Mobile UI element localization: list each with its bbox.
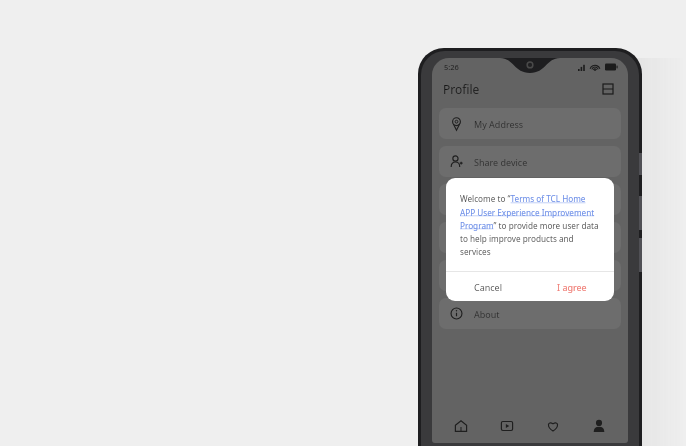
button[interactable]: Order list xyxy=(439,184,621,215)
button[interactable]: My Address xyxy=(439,108,621,139)
staticText: Share device xyxy=(474,156,528,168)
button[interactable]: Share device xyxy=(439,146,621,177)
button[interactable]: I agree xyxy=(530,272,614,301)
staticText: My Address xyxy=(474,118,524,130)
staticText: Help xyxy=(474,232,494,244)
button[interactable]: Help xyxy=(439,222,621,253)
staticText: 5:26 xyxy=(444,62,459,72)
staticText: Order list xyxy=(474,194,514,206)
staticText: Cancel xyxy=(474,281,503,293)
button[interactable]: Home xyxy=(444,409,478,443)
staticText: I agree xyxy=(557,281,587,293)
button[interactable]: About xyxy=(439,298,621,329)
button[interactable]: Cancel xyxy=(446,272,530,301)
button[interactable]: Menu xyxy=(598,79,618,99)
button[interactable]: Settings xyxy=(439,260,621,291)
staticText: Profile xyxy=(443,81,480,97)
button[interactable]: Profile xyxy=(582,409,616,443)
button[interactable]: Videos xyxy=(490,409,524,443)
staticText: Welcome to “Terms of TCL Home APP User E… xyxy=(460,193,602,257)
staticText: About xyxy=(474,308,500,320)
button[interactable]: Favorites xyxy=(536,409,570,443)
staticText: Settings xyxy=(474,270,509,282)
